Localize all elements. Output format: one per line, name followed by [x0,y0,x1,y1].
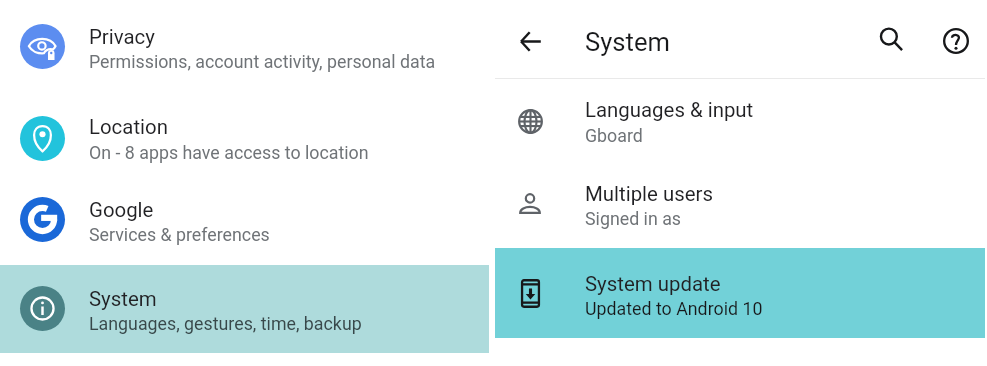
button[interactable]: Languages & input [495,79,985,167]
staticText: Multiple users [585,182,713,206]
staticText: Gboard [585,125,643,146]
button[interactable]: Multiple users [495,161,985,249]
staticText: Services & preferences [89,224,270,245]
button[interactable]: Google [0,176,489,264]
staticText: Languages & input [585,98,754,122]
staticText: System update [585,272,721,296]
staticText: Languages, gestures, time, backup [89,313,362,334]
staticText: Permissions, account activity, personal … [89,51,436,72]
staticText: Privacy [89,25,155,49]
button[interactable]: Navigate up [510,21,550,61]
staticText: Google [89,198,154,222]
staticText: Location [89,115,168,139]
staticText: Updated to Android 10 [585,298,763,319]
button[interactable]: Privacy [0,2,489,90]
button[interactable]: Help [932,17,980,65]
button[interactable]: System update [495,248,985,336]
staticText: On - 8 apps have access to location [89,142,369,163]
button[interactable]: Location [0,94,489,182]
button[interactable]: System [0,265,489,353]
staticText: System [89,287,157,311]
button[interactable]: Search [868,16,916,64]
staticText: Signed in as [585,208,682,229]
staticText: System [585,27,670,57]
